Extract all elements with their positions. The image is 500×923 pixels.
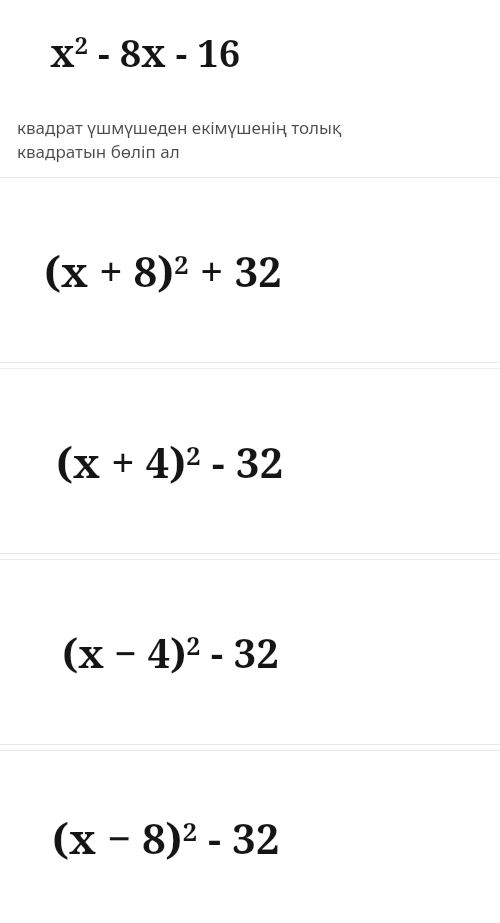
staticText: x2 - 8x - 16: [50, 26, 241, 78]
button[interactable]: (x + 8)2 + 32: [0, 178, 500, 362]
staticText: (x + 8)2 + 32: [44, 242, 282, 299]
button[interactable]: (x − 8)2 - 32: [0, 751, 500, 923]
staticText: квадрат үшмүшеден екімүшенің толық квадр…: [17, 116, 342, 163]
staticText: (x + 4)2 - 32: [56, 433, 284, 490]
staticText: (x − 4)2 - 32: [62, 625, 279, 679]
button[interactable]: (x − 4)2 - 32: [0, 560, 500, 744]
staticText: (x − 8)2 - 32: [52, 809, 280, 866]
button[interactable]: (x + 4)2 - 32: [0, 369, 500, 553]
